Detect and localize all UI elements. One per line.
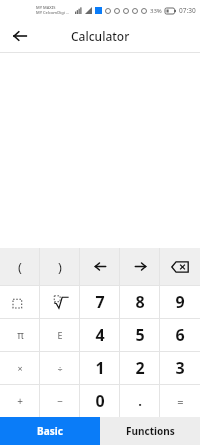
staticText: 07:30 bbox=[179, 6, 196, 15]
staticText: 3 bbox=[175, 357, 185, 379]
button[interactable]: 3 bbox=[160, 352, 200, 384]
button[interactable]: Basic bbox=[0, 417, 100, 445]
button[interactable]: . bbox=[120, 385, 160, 417]
staticText: ( bbox=[18, 258, 22, 276]
staticText: 8 bbox=[135, 291, 145, 313]
button[interactable]: 7 bbox=[80, 286, 120, 318]
button[interactable]: π bbox=[0, 319, 40, 351]
button[interactable]: 0 bbox=[80, 385, 120, 417]
staticText: + bbox=[17, 394, 23, 408]
staticText: ÷ bbox=[57, 362, 63, 374]
staticText: 1 bbox=[95, 357, 105, 379]
staticText: Functions bbox=[126, 424, 175, 438]
staticText: × bbox=[17, 362, 23, 374]
staticText: . bbox=[138, 392, 142, 410]
button[interactable]: Move cursor left bbox=[80, 248, 120, 285]
button[interactable]: 5 bbox=[120, 319, 160, 351]
staticText: 2 bbox=[135, 357, 145, 379]
staticText: 7 bbox=[95, 291, 105, 313]
staticText: 4 bbox=[95, 324, 105, 346]
button[interactable]: Square root bbox=[40, 286, 80, 318]
staticText: MY MAXIS bbox=[36, 5, 56, 10]
staticText: Calculator bbox=[71, 28, 130, 44]
button[interactable]: 8 bbox=[120, 286, 160, 318]
button[interactable]: Backspace bbox=[160, 248, 200, 285]
button[interactable]: 9 bbox=[160, 286, 200, 318]
staticText: − bbox=[57, 394, 63, 408]
button[interactable]: Move cursor right bbox=[120, 248, 160, 285]
staticText: = bbox=[177, 394, 184, 409]
staticText: 9 bbox=[175, 291, 185, 313]
button[interactable]: ) bbox=[40, 248, 80, 285]
staticText: ) bbox=[58, 258, 62, 276]
button[interactable]: = bbox=[160, 385, 200, 417]
button[interactable]: + bbox=[0, 385, 40, 417]
button[interactable]: − bbox=[40, 385, 80, 417]
button[interactable]: Back bbox=[8, 24, 32, 48]
staticText: 0 bbox=[95, 390, 105, 412]
button[interactable]: × bbox=[0, 352, 40, 384]
staticText: 6 bbox=[175, 324, 185, 346]
button[interactable]: Square bbox=[0, 286, 40, 318]
button[interactable]: 1 bbox=[80, 352, 120, 384]
staticText: Basic bbox=[37, 424, 63, 438]
button[interactable]: 6 bbox=[160, 319, 200, 351]
button[interactable]: ( bbox=[0, 248, 40, 285]
button[interactable]: Functions bbox=[100, 417, 200, 445]
button[interactable]: ÷ bbox=[40, 352, 80, 384]
staticText: π bbox=[17, 328, 24, 342]
button[interactable]: 4 bbox=[80, 319, 120, 351]
button[interactable]: 2 bbox=[120, 352, 160, 384]
staticText: 33% bbox=[150, 7, 162, 15]
staticText: MY CelcomDigi ... bbox=[36, 10, 70, 15]
staticText: 5 bbox=[135, 324, 145, 346]
button[interactable]: E bbox=[40, 319, 80, 351]
staticText: E bbox=[57, 329, 63, 341]
